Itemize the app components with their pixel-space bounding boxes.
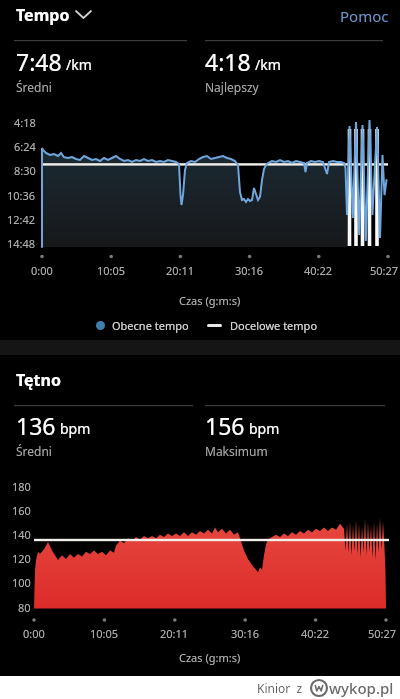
staticText: Kinior z [257, 680, 303, 696]
staticText: Średni [16, 443, 52, 459]
staticText: 180 [12, 479, 31, 494]
button[interactable]: Tempo [16, 4, 70, 26]
button[interactable] [76, 11, 91, 18]
staticText: Pomoc [340, 6, 389, 26]
staticText: 10:36 [7, 188, 36, 203]
staticText: 120 [12, 551, 31, 566]
staticText: Obecne tempo [112, 318, 189, 333]
staticText: 14:48 [7, 236, 36, 251]
button[interactable]: Tętno [16, 369, 61, 391]
staticText: 4:18 [205, 46, 251, 77]
staticText: Tempo [16, 4, 70, 26]
staticText: /km [66, 55, 92, 74]
staticText: Czas (g:m:s) [179, 293, 241, 308]
staticText: Średni [16, 79, 52, 95]
staticText: 40:22 [301, 626, 330, 641]
staticText: 140 [12, 527, 31, 542]
staticText: Tętno [16, 369, 61, 391]
staticText: 30:16 [231, 626, 260, 641]
staticText: Najlepszy [205, 79, 259, 95]
staticText: 80 [18, 600, 31, 615]
staticText: 30:16 [235, 263, 264, 278]
staticText: 100 [12, 575, 31, 590]
staticText: bpm [249, 419, 280, 438]
staticText: Maksimum [205, 443, 268, 459]
staticText: bpm [60, 419, 91, 438]
staticText: 0:00 [31, 263, 53, 278]
staticText: 50:27 [368, 626, 397, 641]
staticText: 0:00 [23, 626, 45, 641]
staticText: Docelowe tempo [230, 318, 318, 333]
staticText: 10:05 [97, 263, 126, 278]
staticText: 156 [205, 410, 245, 441]
staticText: 20:11 [166, 263, 195, 278]
staticText: /km [255, 55, 281, 74]
button[interactable]: Pomoc [340, 6, 389, 26]
staticText: 40:22 [304, 263, 333, 278]
staticText: 20:11 [160, 626, 189, 641]
staticText: 6:24 [14, 139, 36, 154]
staticText: 10:05 [90, 626, 119, 641]
staticText: 160 [12, 503, 31, 518]
staticText: 8:30 [14, 163, 36, 178]
staticText: 12:42 [7, 212, 36, 227]
staticText: Czas (g:m:s) [179, 650, 241, 665]
staticText: 7:48 [16, 46, 62, 77]
staticText: wykop.pl [329, 678, 394, 698]
staticText: 50:27 [370, 263, 399, 278]
staticText: 4:18 [14, 115, 36, 130]
staticText: 136 [16, 410, 56, 441]
